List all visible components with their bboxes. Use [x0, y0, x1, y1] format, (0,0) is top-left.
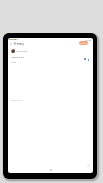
button[interactable]: More options	[87, 58, 90, 61]
staticText: Sent from my	[11, 99, 23, 101]
button[interactable]: Compose email	[87, 164, 90, 167]
staticText: Compose	[79, 42, 88, 45]
staticText: Lucy Brown	[16, 50, 28, 53]
button[interactable]: Primary	[14, 42, 24, 46]
button[interactable]: Sender avatar	[11, 49, 15, 53]
button[interactable]: Back	[9, 42, 13, 46]
button[interactable]: Compose	[79, 41, 88, 45]
staticText: 12:30	[85, 38, 92, 41]
staticText: Weekend trip	[11, 56, 25, 59]
staticText: to me	[11, 61, 17, 64]
